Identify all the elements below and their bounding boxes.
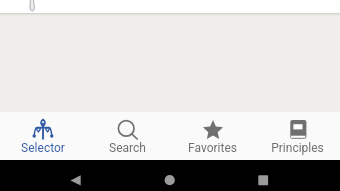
other: Selector bbox=[33, 119, 53, 139]
other: Principles bbox=[288, 119, 308, 139]
button[interactable]: Favorites bbox=[170, 112, 255, 160]
staticText: Selector bbox=[21, 141, 65, 155]
staticText: Favorites bbox=[188, 141, 237, 155]
staticText: Principles bbox=[271, 141, 324, 155]
button[interactable]: Principles bbox=[255, 112, 340, 160]
other: Search bbox=[118, 119, 138, 139]
button[interactable]: Search bbox=[85, 112, 170, 160]
other: Favorites bbox=[203, 119, 223, 139]
staticText: Search bbox=[109, 141, 146, 155]
button[interactable]: Selector bbox=[0, 112, 85, 160]
